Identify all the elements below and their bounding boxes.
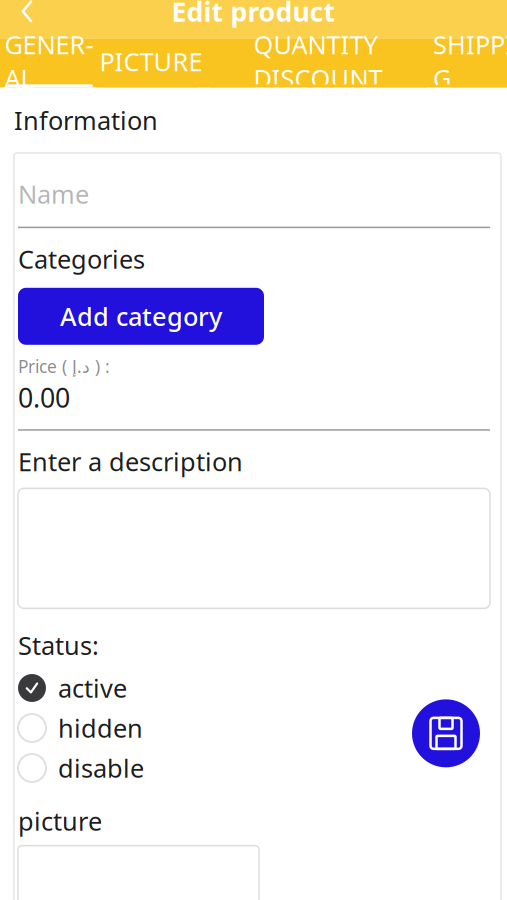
staticText: Edit product [171,0,335,29]
button[interactable]: Back [0,0,54,38]
button[interactable]: Description field [18,488,490,608]
staticText: Name [18,177,89,211]
staticText: active [58,671,127,705]
button[interactable]: QUANTITY DISCOUNT [204,38,432,87]
button[interactable]: active [14,670,318,706]
button[interactable]: SHIPPING [432,38,507,87]
staticText: Information [14,103,158,137]
staticText: Add category [60,299,222,333]
button[interactable]: GENERAL [0,38,98,87]
button[interactable]: hidden [14,710,318,746]
button[interactable]: Add picture [18,846,259,900]
staticText: SHIPPING [433,28,507,95]
staticText: 0.00 [18,380,70,415]
staticText: Enter a description [18,445,243,478]
staticText: QUANTITY DISCOUNT [253,28,382,95]
button[interactable]: Add category [18,288,264,345]
staticText: Categories [18,242,145,276]
staticText: disable [58,751,144,785]
staticText: picture [18,804,102,838]
staticText: Price ( د.إ ) : [18,355,110,378]
staticText: PICTURE [99,44,202,78]
staticText: hidden [58,711,143,745]
staticText: Status: [18,628,99,662]
staticText: GENERAL [4,28,93,95]
button[interactable]: PICTURE [98,38,204,87]
button[interactable]: disable [14,750,318,786]
button[interactable]: Save [412,699,480,767]
